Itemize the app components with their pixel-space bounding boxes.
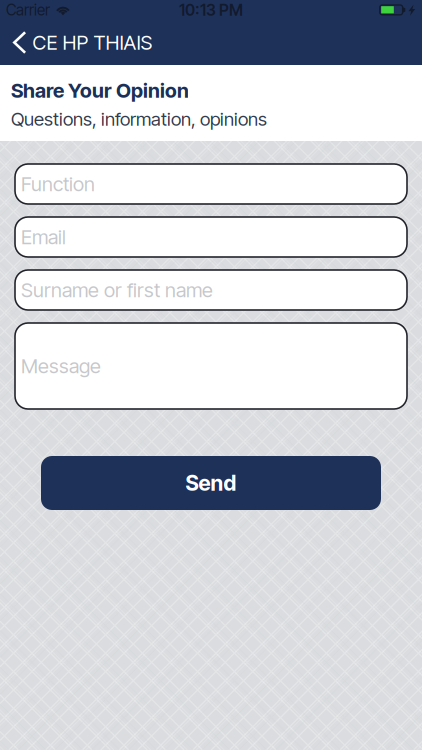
button[interactable]: Email [15,217,407,257]
button[interactable]: Message [15,323,407,409]
button[interactable]: Send [41,456,381,510]
staticText: Message [21,354,101,378]
button[interactable]: Function [15,164,407,204]
staticText: Share Your Opinion [11,78,189,103]
staticText: Send [185,470,236,496]
staticText: Carrier [6,1,50,19]
staticText: Questions, information, opinions [11,108,267,130]
staticText: CE HP THIAIS [32,30,152,55]
staticText: 10:13 PM [179,0,243,20]
staticText: Function [21,172,95,196]
button[interactable]: Surname or first name [15,270,407,310]
staticText: Surname or first name [21,278,213,302]
button[interactable]: CE HP THIAIS [0,20,164,65]
staticText: Email [21,225,66,249]
